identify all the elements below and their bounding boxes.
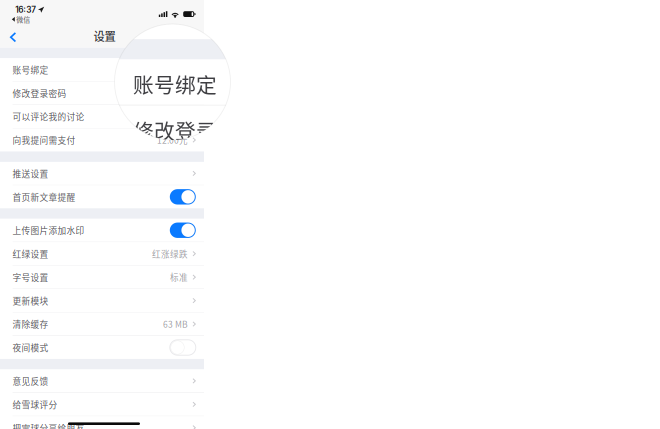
staticText: 红绿设置: [13, 247, 49, 260]
staticText: 设置: [93, 28, 115, 44]
staticText: 红涨绿跌: [152, 247, 188, 260]
button[interactable]: 字号设置: [0, 266, 204, 289]
staticText: 向我提问需支付: [13, 134, 76, 146]
button[interactable]: 意见反馈: [0, 369, 204, 392]
staticText: 账号绑定: [13, 63, 49, 76]
staticText: 可以评论我的讨论: [13, 110, 85, 123]
staticText: 修改登录密码: [13, 87, 67, 99]
staticText: 标准: [170, 271, 188, 283]
staticText: 清除缓存: [13, 318, 49, 330]
button[interactable]: 给雪球评分: [0, 393, 204, 416]
button[interactable]: 修改登录密码: [0, 82, 204, 104]
staticText: 推送设置: [13, 167, 49, 180]
staticText: 把雪球分享给朋友: [13, 421, 85, 429]
button[interactable]: Back: [0, 24, 27, 48]
button[interactable]: 推送设置: [0, 162, 204, 185]
button[interactable]: 把雪球分享给朋友: [0, 416, 204, 429]
button[interactable]: 更新模块: [0, 289, 204, 312]
staticText: 16:37: [15, 5, 36, 15]
button[interactable]: 红绿设置: [0, 242, 204, 265]
button[interactable]: 向我提问需支付: [0, 128, 204, 151]
button[interactable]: 首页新文章提醒: [0, 185, 204, 208]
staticText: 夜间模式: [13, 341, 49, 354]
button[interactable]: 夜间模式: [0, 336, 204, 359]
button[interactable]: 可以评论我的讨论: [0, 105, 204, 128]
staticText: 首页新文章提醒: [13, 191, 76, 203]
staticText: 修改登录密码: [133, 115, 259, 145]
staticText: 给雪球评分: [13, 398, 58, 411]
button[interactable]: 上传图片添加水印: [0, 219, 204, 242]
staticText: 12.00元: [157, 134, 188, 146]
staticText: 意见反馈: [13, 375, 49, 387]
staticText: 字号设置: [13, 271, 49, 283]
staticText: 更新模块: [13, 294, 49, 307]
button[interactable]: 账号绑定: [0, 58, 204, 81]
staticText: 上传图片添加水印: [13, 224, 85, 236]
staticText: 微信: [16, 14, 30, 24]
staticText: 账号绑定: [133, 69, 217, 99]
button[interactable]: 清除缓存: [0, 313, 204, 335]
staticText: 63 MB: [163, 318, 188, 330]
